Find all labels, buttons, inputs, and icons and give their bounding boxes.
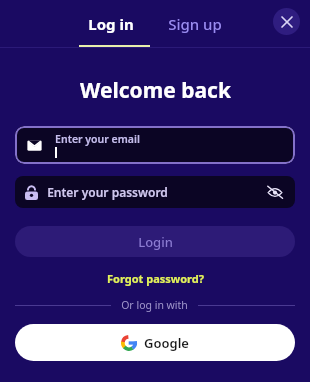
staticText: Or log in with [121, 298, 188, 312]
staticText: Sign up [168, 14, 222, 34]
staticText: Log in [88, 14, 134, 34]
staticText: Welcome back [80, 76, 231, 105]
button[interactable]: Log in [77, 8, 145, 40]
button[interactable]: Google [15, 324, 295, 361]
button[interactable]: Enter your email [15, 126, 295, 164]
button[interactable]: Sign up [157, 8, 233, 40]
button[interactable]: Forgot password? [104, 268, 207, 289]
button[interactable]: Show password [265, 182, 285, 202]
button[interactable]: Enter your password [15, 176, 295, 208]
staticText: Login [138, 233, 173, 251]
staticText: Enter your email [55, 132, 140, 146]
staticText: Google [144, 334, 189, 352]
button[interactable]: Login [15, 226, 295, 257]
button[interactable]: Close [273, 8, 300, 35]
staticText: Enter your password [47, 184, 168, 200]
staticText: Forgot password? [107, 271, 204, 286]
